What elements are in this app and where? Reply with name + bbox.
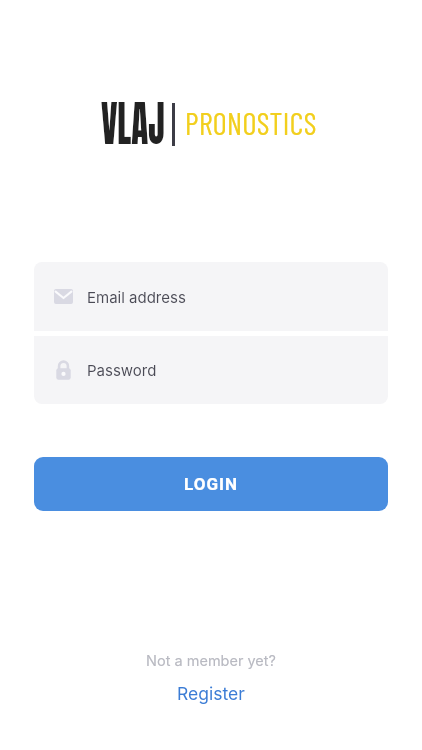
button[interactable]: Register <box>171 681 251 706</box>
staticText: Email address <box>87 288 186 306</box>
staticText: Password <box>87 361 157 379</box>
button[interactable]: Email address <box>34 262 388 331</box>
staticText: Not a member yet? <box>0 652 422 670</box>
staticText: Register <box>177 683 245 704</box>
staticText: PRONOSTICS <box>185 104 317 141</box>
staticText: LOGIN <box>184 474 238 494</box>
staticText: VLAJ <box>101 88 165 160</box>
button[interactable]: Password <box>34 336 388 404</box>
button[interactable]: LOGIN <box>34 457 388 511</box>
